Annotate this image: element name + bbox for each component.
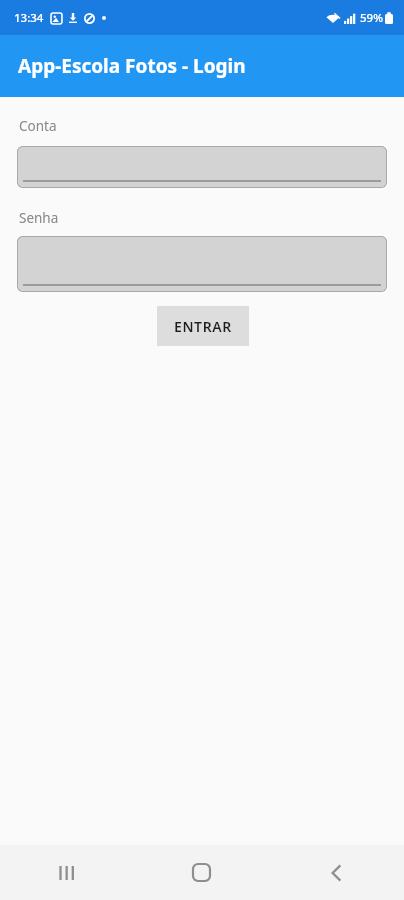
- button[interactable]: Back: [269, 845, 404, 900]
- button[interactable]: [17, 146, 387, 188]
- button[interactable]: Home: [134, 845, 269, 900]
- button[interactable]: ENTRAR: [157, 306, 249, 346]
- staticText: Senha: [19, 209, 59, 227]
- button[interactable]: [17, 236, 387, 292]
- staticText: App-Escola Fotos - Login: [18, 53, 246, 79]
- staticText: ENTRAR: [174, 317, 232, 336]
- staticText: 59%: [360, 10, 383, 26]
- staticText: Conta: [19, 117, 57, 135]
- staticText: 13:34: [14, 10, 44, 26]
- button[interactable]: Recent apps: [0, 845, 134, 900]
